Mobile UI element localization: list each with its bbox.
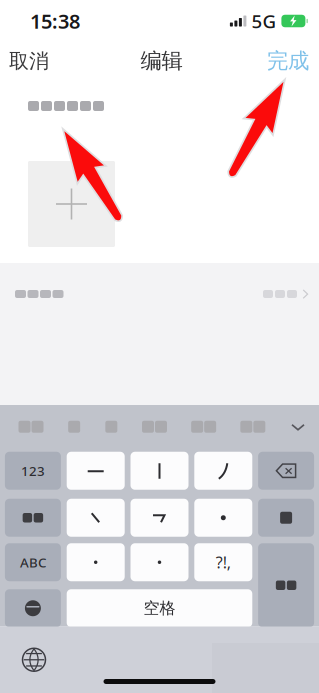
button[interactable] <box>97 410 125 444</box>
staticText: 编辑 <box>140 48 182 74</box>
button[interactable] <box>130 543 188 581</box>
button[interactable] <box>0 280 319 308</box>
button[interactable]: Switch keyboard <box>12 638 56 682</box>
button[interactable] <box>258 499 314 537</box>
button[interactable] <box>5 499 61 537</box>
staticText: 取消 <box>9 49 49 73</box>
button[interactable] <box>67 452 125 490</box>
button[interactable]: 完成 <box>259 42 317 80</box>
staticText: 完成 <box>267 48 309 74</box>
staticText: ABC <box>20 553 46 571</box>
staticText: 15:38 <box>30 8 80 34</box>
button[interactable]: Hide candidates <box>282 410 314 444</box>
button[interactable] <box>60 410 88 444</box>
staticText: 5G <box>251 9 276 33</box>
button[interactable] <box>67 499 125 537</box>
button[interactable] <box>194 452 252 490</box>
button[interactable] <box>11 410 51 444</box>
button[interactable] <box>67 543 125 581</box>
button[interactable] <box>258 452 314 490</box>
button[interactable] <box>130 499 188 537</box>
button[interactable]: 123 <box>5 452 61 490</box>
button[interactable] <box>5 589 61 627</box>
button[interactable] <box>184 410 224 444</box>
button[interactable] <box>130 452 188 490</box>
button[interactable] <box>194 499 252 537</box>
button[interactable]: 取消 <box>0 42 58 80</box>
button[interactable]: Add photo <box>28 161 115 247</box>
button[interactable]: ?!, <box>194 543 252 581</box>
button[interactable] <box>258 543 314 627</box>
staticText: ?!, <box>216 552 231 573</box>
staticText: 空格 <box>143 598 175 618</box>
button[interactable] <box>233 410 273 444</box>
button[interactable]: ABC <box>5 543 61 581</box>
button[interactable]: 空格 <box>67 589 252 627</box>
staticText: 123 <box>21 462 45 480</box>
button[interactable] <box>134 410 174 444</box>
